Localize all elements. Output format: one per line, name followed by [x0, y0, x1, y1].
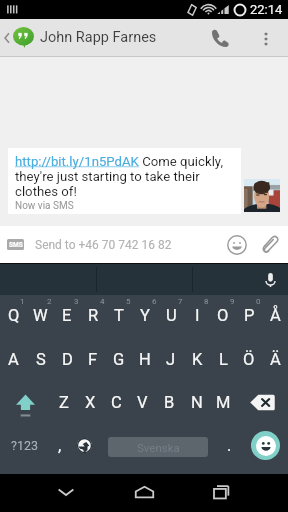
staticText: H — [139, 350, 151, 369]
staticText: . — [227, 436, 232, 455]
staticText: J — [166, 350, 176, 369]
staticText: U — [166, 306, 177, 325]
button[interactable]: Recent apps — [193, 474, 249, 512]
staticText: F — [88, 350, 98, 369]
button[interactable]: . — [216, 424, 242, 467]
staticText: X — [85, 393, 96, 412]
button[interactable]: Å — [262, 295, 288, 338]
staticText: E — [62, 306, 72, 325]
button[interactable]: K — [184, 338, 210, 381]
button[interactable]: Change language — [71, 424, 97, 467]
staticText: A — [8, 350, 19, 369]
button[interactable]: Voice input — [193, 264, 288, 295]
button[interactable]: T — [106, 295, 132, 338]
staticText: 6 — [152, 297, 157, 306]
button[interactable]: Hide keyboard — [38, 474, 94, 512]
staticText: ?123 — [11, 438, 38, 453]
button[interactable]: Y — [132, 295, 158, 338]
button[interactable]: V — [129, 381, 156, 424]
staticText: 4 — [100, 297, 105, 306]
button[interactable]: R — [80, 295, 106, 338]
button[interactable]: Z — [51, 381, 77, 424]
staticText: 5 — [126, 297, 131, 306]
staticText: P — [244, 306, 255, 325]
staticText: 1 — [20, 297, 25, 306]
staticText: Ö — [243, 350, 255, 369]
button[interactable]: I — [184, 295, 210, 338]
button[interactable]: Svenska — [108, 437, 208, 457]
staticText: K — [192, 350, 203, 369]
staticText: http://bit.ly/1n5PdAK Come quickly, they… — [15, 154, 234, 199]
staticText: Q — [8, 306, 20, 325]
button[interactable]: Ä — [262, 338, 288, 381]
staticText: L — [219, 350, 228, 369]
button[interactable]: G — [106, 338, 132, 381]
staticText: O — [217, 306, 229, 325]
staticText: Svenska — [137, 441, 180, 454]
button[interactable]: http://bit.ly/1n5PdAK Come quickly, they… — [8, 148, 241, 214]
button[interactable]: Insert emoji — [221, 226, 253, 263]
button[interactable]: M — [210, 381, 237, 424]
staticText: T — [114, 306, 124, 325]
button[interactable]: P — [236, 295, 262, 338]
button[interactable]: W — [27, 295, 54, 338]
button[interactable]: B — [156, 381, 183, 424]
button[interactable]: H — [132, 338, 158, 381]
staticText: I — [195, 306, 200, 325]
button[interactable]: O — [210, 295, 236, 338]
staticText: B — [164, 393, 175, 412]
staticText: 9 — [230, 297, 235, 306]
staticText: R — [88, 306, 99, 325]
staticText: Å — [270, 306, 281, 325]
button[interactable]: Ö — [236, 338, 262, 381]
button[interactable]: Q — [0, 295, 27, 338]
staticText: Send to +46 70 742 16 82 — [35, 238, 172, 252]
button[interactable]: Emoji keyboard — [242, 424, 288, 467]
staticText: 2 — [47, 297, 52, 306]
staticText: G — [113, 350, 125, 369]
button[interactable]: L — [210, 338, 236, 381]
button[interactable]: N — [183, 381, 210, 424]
staticText: , — [58, 436, 62, 455]
staticText: Now via SMS — [15, 200, 74, 212]
button[interactable]: X — [77, 381, 103, 424]
button[interactable]: F — [80, 338, 106, 381]
staticText: John Rapp Farnes — [40, 29, 157, 46]
staticText: SMS — [9, 241, 23, 249]
staticText: Y — [140, 306, 150, 325]
button[interactable]: Call — [196, 19, 244, 56]
staticText: M — [216, 393, 231, 412]
staticText: 3 — [74, 297, 79, 306]
staticText: Z — [59, 393, 69, 412]
staticText: S — [36, 350, 46, 369]
button[interactable]: , — [49, 424, 71, 467]
staticText: W — [33, 306, 48, 325]
staticText: 0 — [256, 297, 261, 306]
staticText: D — [62, 350, 73, 369]
button[interactable]: Navigate up — [0, 19, 36, 56]
button[interactable]: A — [0, 338, 27, 381]
button[interactable]: Attach — [253, 226, 285, 263]
staticText: 22:14 — [250, 2, 283, 17]
staticText: V — [137, 393, 148, 412]
staticText: 8 — [204, 297, 209, 306]
button[interactable]: Home — [116, 474, 172, 512]
button[interactable]: ?123 — [0, 424, 49, 467]
staticText: Ä — [270, 350, 281, 369]
button[interactable]: Shift — [0, 381, 51, 424]
button[interactable]: More options — [244, 19, 288, 56]
button[interactable]: Backspace — [237, 381, 288, 424]
button[interactable]: J — [158, 338, 184, 381]
staticText: C — [111, 393, 122, 412]
button[interactable]: C — [103, 381, 129, 424]
button[interactable]: S — [27, 338, 54, 381]
button[interactable]: U — [158, 295, 184, 338]
staticText: N — [191, 393, 203, 412]
button[interactable]: D — [54, 338, 80, 381]
button[interactable]: E — [54, 295, 80, 338]
staticText: 7 — [178, 297, 183, 306]
